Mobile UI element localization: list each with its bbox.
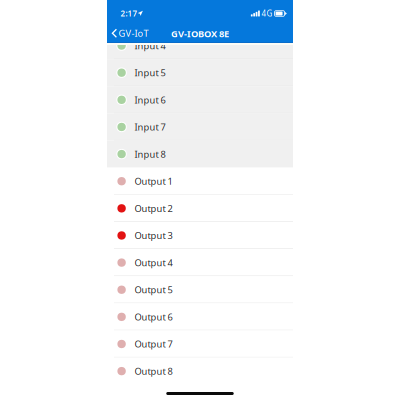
- button[interactable]: Output 1: [107, 168, 293, 195]
- staticText: 2:17: [120, 8, 137, 19]
- staticText: Input 4: [135, 39, 166, 52]
- staticText: 4G: [262, 8, 273, 19]
- button[interactable]: Output 8: [107, 358, 293, 385]
- button[interactable]: Input 6: [107, 86, 293, 113]
- staticText: Output 4: [135, 256, 173, 269]
- staticText: Output 1: [135, 175, 173, 187]
- staticText: Input 7: [135, 121, 166, 133]
- staticText: Input 5: [135, 66, 166, 79]
- button[interactable]: Output 6: [107, 303, 293, 330]
- staticText: Output 3: [135, 229, 173, 242]
- button[interactable]: Output 3: [107, 222, 293, 249]
- button[interactable]: Output 4: [107, 249, 293, 276]
- staticText: Output 7: [135, 338, 173, 350]
- staticText: GV-IOBOX 8E: [171, 27, 229, 40]
- button[interactable]: GV-IoT: [107, 22, 148, 42]
- staticText: Output 5: [135, 283, 173, 296]
- staticText: Output 8: [135, 365, 173, 377]
- staticText: Input 8: [135, 148, 166, 160]
- button[interactable]: Input 7: [107, 113, 293, 140]
- button[interactable]: Input 5: [107, 59, 293, 86]
- button[interactable]: Input 4: [107, 32, 293, 59]
- button[interactable]: Output 5: [107, 276, 293, 303]
- staticText: GV-IoT: [118, 27, 148, 39]
- staticText: Output 6: [135, 311, 173, 323]
- staticText: Input 6: [135, 94, 166, 106]
- staticText: Output 2: [135, 202, 173, 214]
- button[interactable]: Input 8: [107, 140, 293, 168]
- button[interactable]: Output 2: [107, 195, 293, 222]
- button[interactable]: Output 7: [107, 330, 293, 357]
